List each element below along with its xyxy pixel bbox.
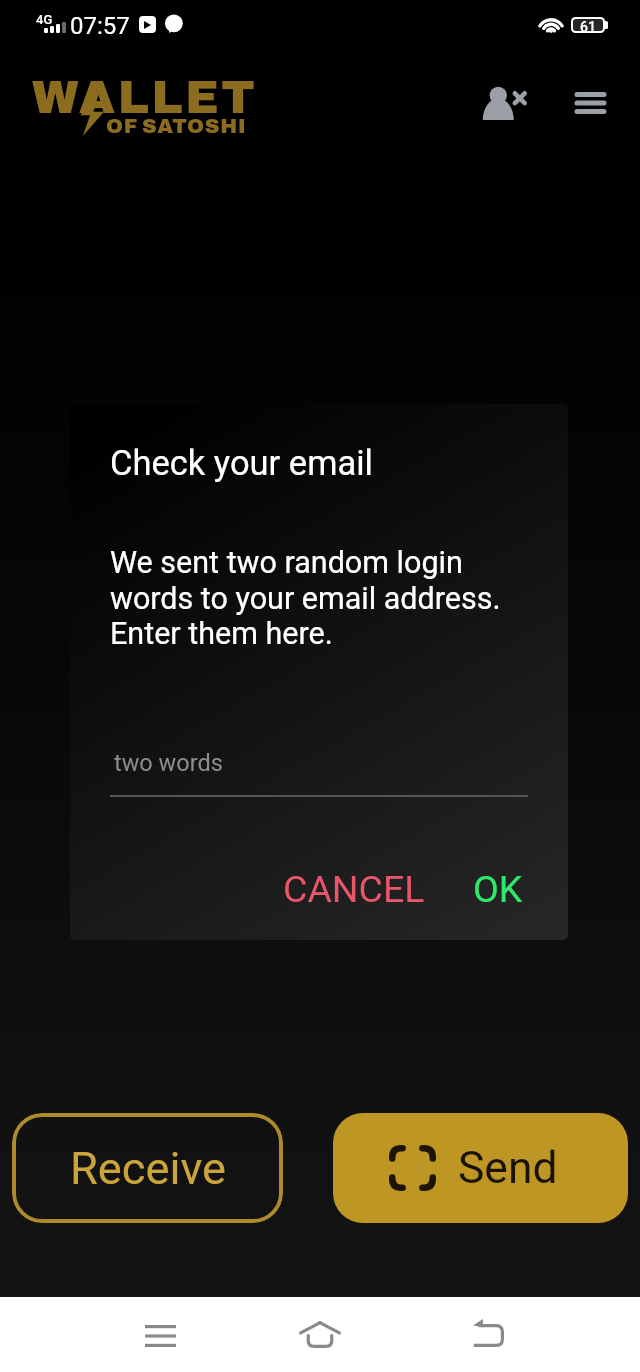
- button[interactable]: Back: [447, 1297, 527, 1372]
- button[interactable]: OK: [459, 854, 537, 924]
- button[interactable]: Menu: [558, 71, 622, 135]
- staticText: OK: [473, 867, 523, 911]
- staticText: OF SATOSHI: [106, 115, 247, 137]
- button[interactable]: Send: [333, 1113, 628, 1223]
- button[interactable]: Recent apps: [120, 1297, 200, 1372]
- staticText: Receive: [70, 1142, 226, 1195]
- button[interactable]: Receive: [12, 1113, 283, 1223]
- staticText: 07:57: [70, 12, 130, 40]
- button[interactable]: Log out: [467, 71, 541, 135]
- staticText: 61: [580, 19, 596, 31]
- staticText: Check your email: [110, 443, 373, 483]
- button[interactable]: CANCEL: [269, 854, 439, 924]
- button[interactable]: Home: [280, 1297, 360, 1372]
- staticText: two words: [114, 749, 223, 777]
- staticText: CANCEL: [283, 867, 425, 911]
- staticText: 4G: [36, 12, 53, 27]
- staticText: WALLET: [32, 72, 258, 123]
- staticText: We sent two random login words to your e…: [110, 545, 515, 651]
- staticText: Send: [458, 1142, 558, 1194]
